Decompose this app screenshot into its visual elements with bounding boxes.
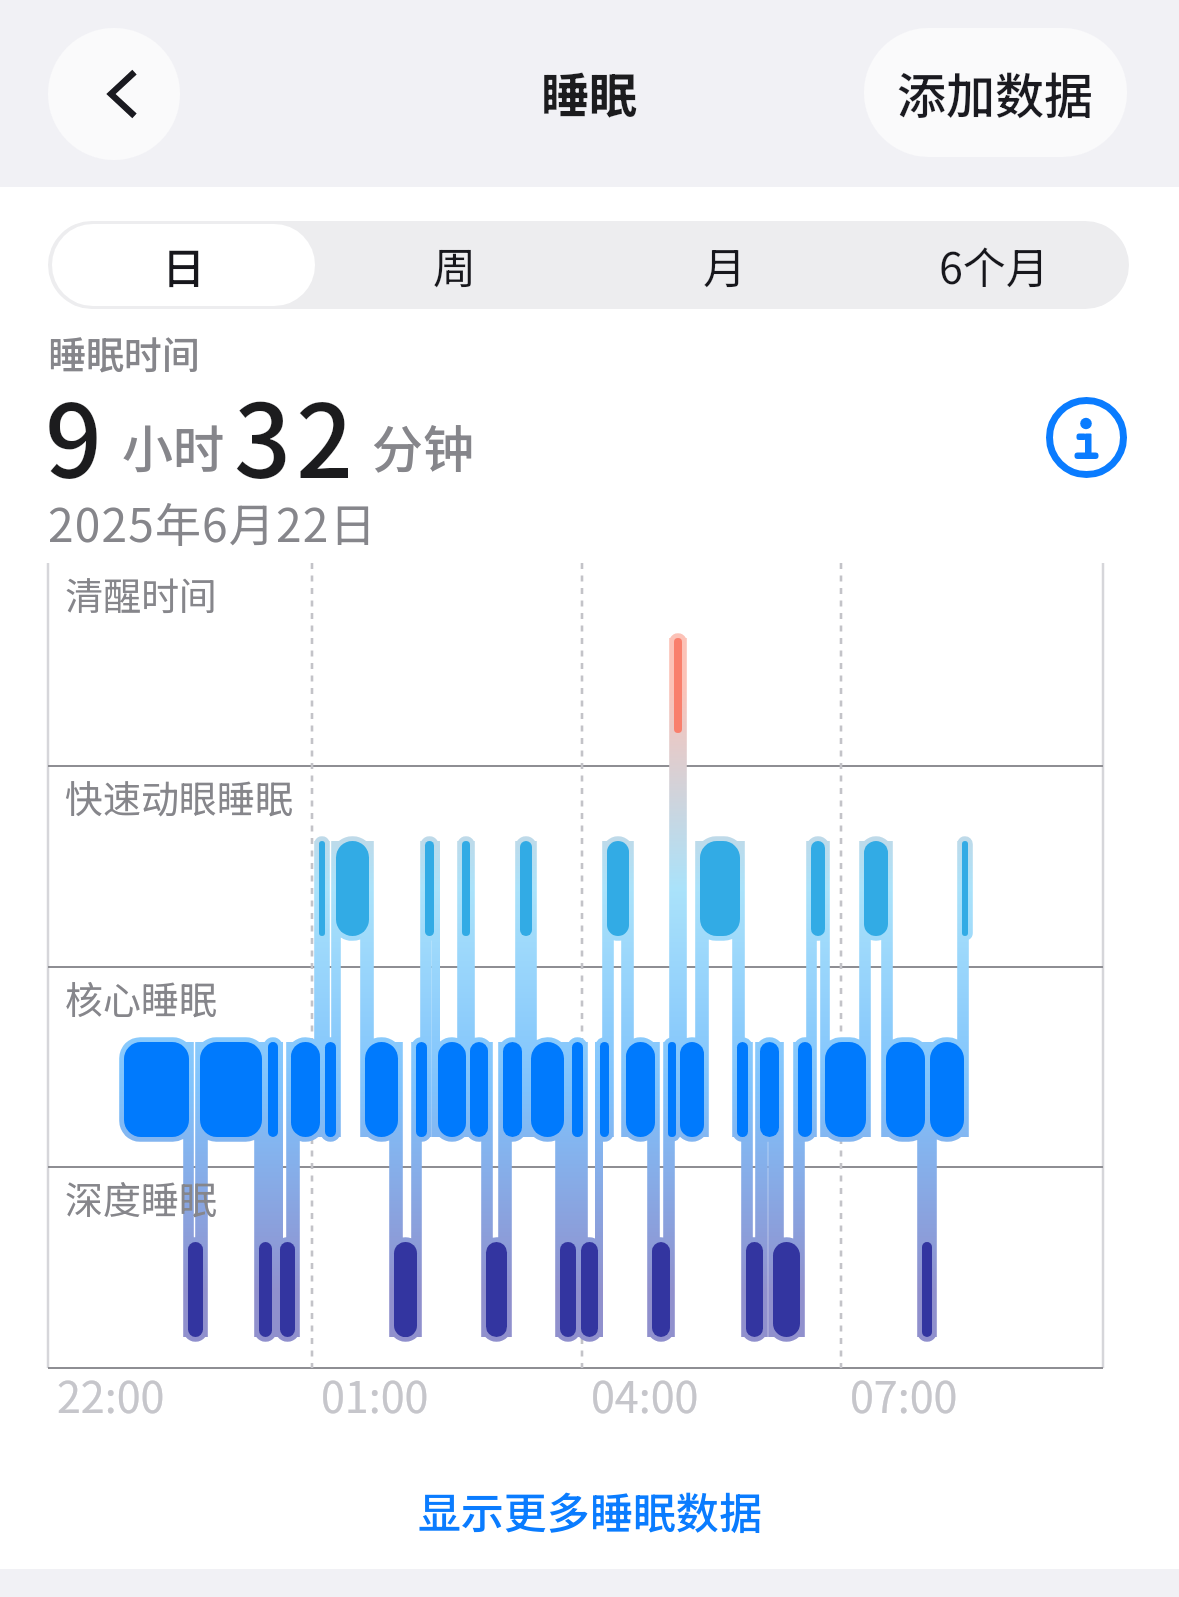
staticText: 04:00 <box>591 1363 699 1425</box>
staticText: 22:00 <box>57 1363 165 1425</box>
staticText: 核心睡眠 <box>65 970 218 1025</box>
staticText: 日 <box>162 234 205 296</box>
button[interactable]: 添加数据 <box>864 28 1127 157</box>
staticText: 小时 <box>122 409 225 483</box>
button[interactable]: 返回 <box>48 28 180 160</box>
staticText: 9 <box>45 362 102 507</box>
staticText: 01:00 <box>321 1363 429 1425</box>
staticText: 07:00 <box>850 1363 958 1425</box>
staticText: 清醒时间 <box>65 566 218 621</box>
button[interactable]: 显示更多睡眠数据 <box>0 1455 1179 1565</box>
staticText: 32 <box>234 362 358 507</box>
button[interactable]: 信息 <box>1042 393 1131 482</box>
staticText: 6个月 <box>939 234 1049 296</box>
staticText: 分钟 <box>372 409 475 483</box>
button[interactable]: 周 <box>323 224 585 306</box>
staticText: 添加数据 <box>897 57 1094 128</box>
staticText: 月 <box>703 234 746 296</box>
button[interactable]: 月 <box>593 224 855 306</box>
button[interactable]: 日 <box>52 224 315 306</box>
staticText: 周 <box>433 234 476 296</box>
staticText: 深度睡眠 <box>65 1170 218 1225</box>
staticText: 睡眠时间 <box>48 325 201 380</box>
staticText: 显示更多睡眠数据 <box>418 1479 762 1541</box>
staticText: 2025年6月22日 <box>48 489 377 556</box>
staticText: 快速动眼睡眠 <box>65 769 294 824</box>
staticText: 睡眠 <box>541 57 638 127</box>
button[interactable]: 6个月 <box>863 224 1125 306</box>
